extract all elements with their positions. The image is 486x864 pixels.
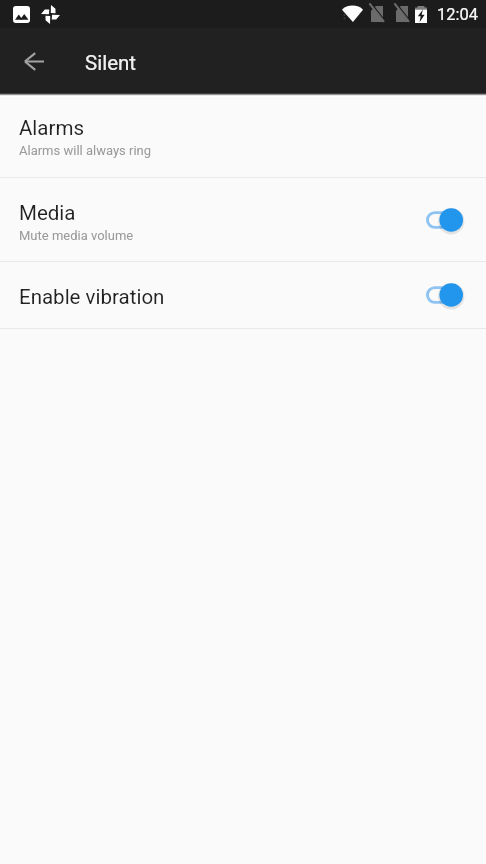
staticText: Alarms will always ring xyxy=(19,143,152,158)
button[interactable]: Toggle setting xyxy=(426,282,463,308)
staticText: Silent xyxy=(85,51,137,75)
button[interactable]: Alarms xyxy=(0,93,486,177)
staticText: Media xyxy=(19,201,76,225)
staticText: Mute media volume xyxy=(19,228,134,243)
button[interactable]: Toggle setting xyxy=(426,207,463,233)
staticText: Enable vibration xyxy=(19,285,165,309)
staticText: 12:04 xyxy=(437,5,479,24)
button[interactable]: Navigate up xyxy=(11,38,57,84)
button[interactable]: Media xyxy=(0,178,486,261)
staticText: Alarms xyxy=(19,116,85,140)
button[interactable]: Enable vibration xyxy=(0,262,486,328)
